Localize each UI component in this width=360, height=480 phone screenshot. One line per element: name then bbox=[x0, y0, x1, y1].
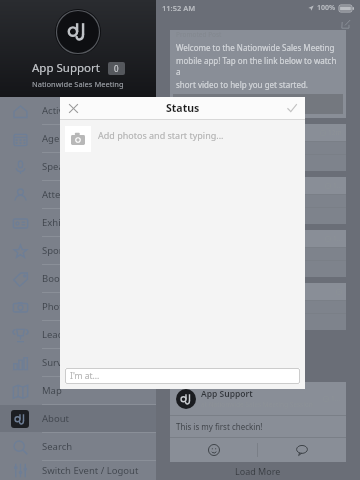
button[interactable]: Sponsors bbox=[0, 237, 156, 264]
button[interactable]: Map bbox=[0, 377, 156, 404]
button[interactable]: Comment bbox=[258, 438, 346, 462]
button[interactable]: Load More bbox=[156, 462, 360, 480]
staticText: Attendees bbox=[42, 188, 88, 201]
staticText: Sponsors bbox=[42, 244, 84, 257]
staticText: About bbox=[42, 412, 69, 425]
button[interactable]: Add photo bbox=[65, 126, 91, 152]
button[interactable]: Attendees bbox=[0, 181, 156, 208]
button[interactable]: Compose post bbox=[339, 17, 352, 30]
button[interactable]: Activity bbox=[0, 97, 156, 124]
button[interactable]: React bbox=[170, 438, 257, 462]
button[interactable]: I'm at... bbox=[65, 368, 300, 384]
staticText: 100% bbox=[317, 3, 336, 13]
staticText: Welcome to the Nationwide Sales Meeting bbox=[176, 42, 335, 53]
staticText: Search bbox=[42, 440, 73, 453]
staticText: Leaderboard bbox=[42, 328, 100, 341]
button[interactable]: Unread count bbox=[108, 62, 125, 75]
staticText: Exhibitors bbox=[42, 216, 87, 229]
staticText: 0 bbox=[114, 63, 119, 74]
button[interactable]: Your Video Guide bbox=[173, 94, 343, 114]
staticText: Photos bbox=[42, 300, 74, 313]
staticText: 11:52 AM bbox=[162, 3, 196, 13]
button[interactable]: Exhibitors bbox=[0, 209, 156, 236]
staticText: I'm at... bbox=[70, 370, 100, 382]
button[interactable]: Search bbox=[0, 433, 156, 460]
staticText: Your Video Guide bbox=[222, 98, 295, 110]
button[interactable]: Bookmarks bbox=[0, 265, 156, 292]
staticText: Nationwide Sales Meeting bbox=[32, 79, 124, 89]
staticText: App Support bbox=[32, 60, 100, 76]
staticText: short video to help you get started. bbox=[176, 79, 309, 90]
button[interactable]: Leaderboard bbox=[0, 321, 156, 348]
button[interactable]: Close bbox=[64, 99, 82, 117]
button[interactable]: Agenda bbox=[0, 125, 156, 152]
button[interactable]: Speakers bbox=[0, 153, 156, 180]
staticText: Status bbox=[166, 101, 200, 115]
staticText: Bookmarks bbox=[42, 272, 93, 285]
button[interactable]: About bbox=[0, 405, 156, 432]
staticText: Activity bbox=[42, 104, 75, 117]
staticText: Agenda bbox=[42, 132, 77, 145]
button[interactable]: Photos bbox=[0, 293, 156, 320]
staticText: Switch Event / Logout bbox=[42, 464, 139, 477]
staticText: mobile app! Tap on the link below to wat… bbox=[176, 55, 340, 77]
button[interactable]: Switch Event / Logout bbox=[0, 461, 156, 480]
staticText: This is my first checkin! bbox=[176, 421, 263, 432]
staticText: Surveys bbox=[42, 356, 77, 369]
staticText: Speakers bbox=[42, 160, 83, 173]
staticText: Load More bbox=[235, 465, 281, 477]
button[interactable]: Post status bbox=[283, 99, 301, 117]
staticText: Add photos and start typing... bbox=[98, 129, 224, 141]
staticText: Map bbox=[42, 384, 62, 397]
staticText: App Support bbox=[201, 388, 253, 400]
button[interactable]: Surveys bbox=[0, 349, 156, 376]
